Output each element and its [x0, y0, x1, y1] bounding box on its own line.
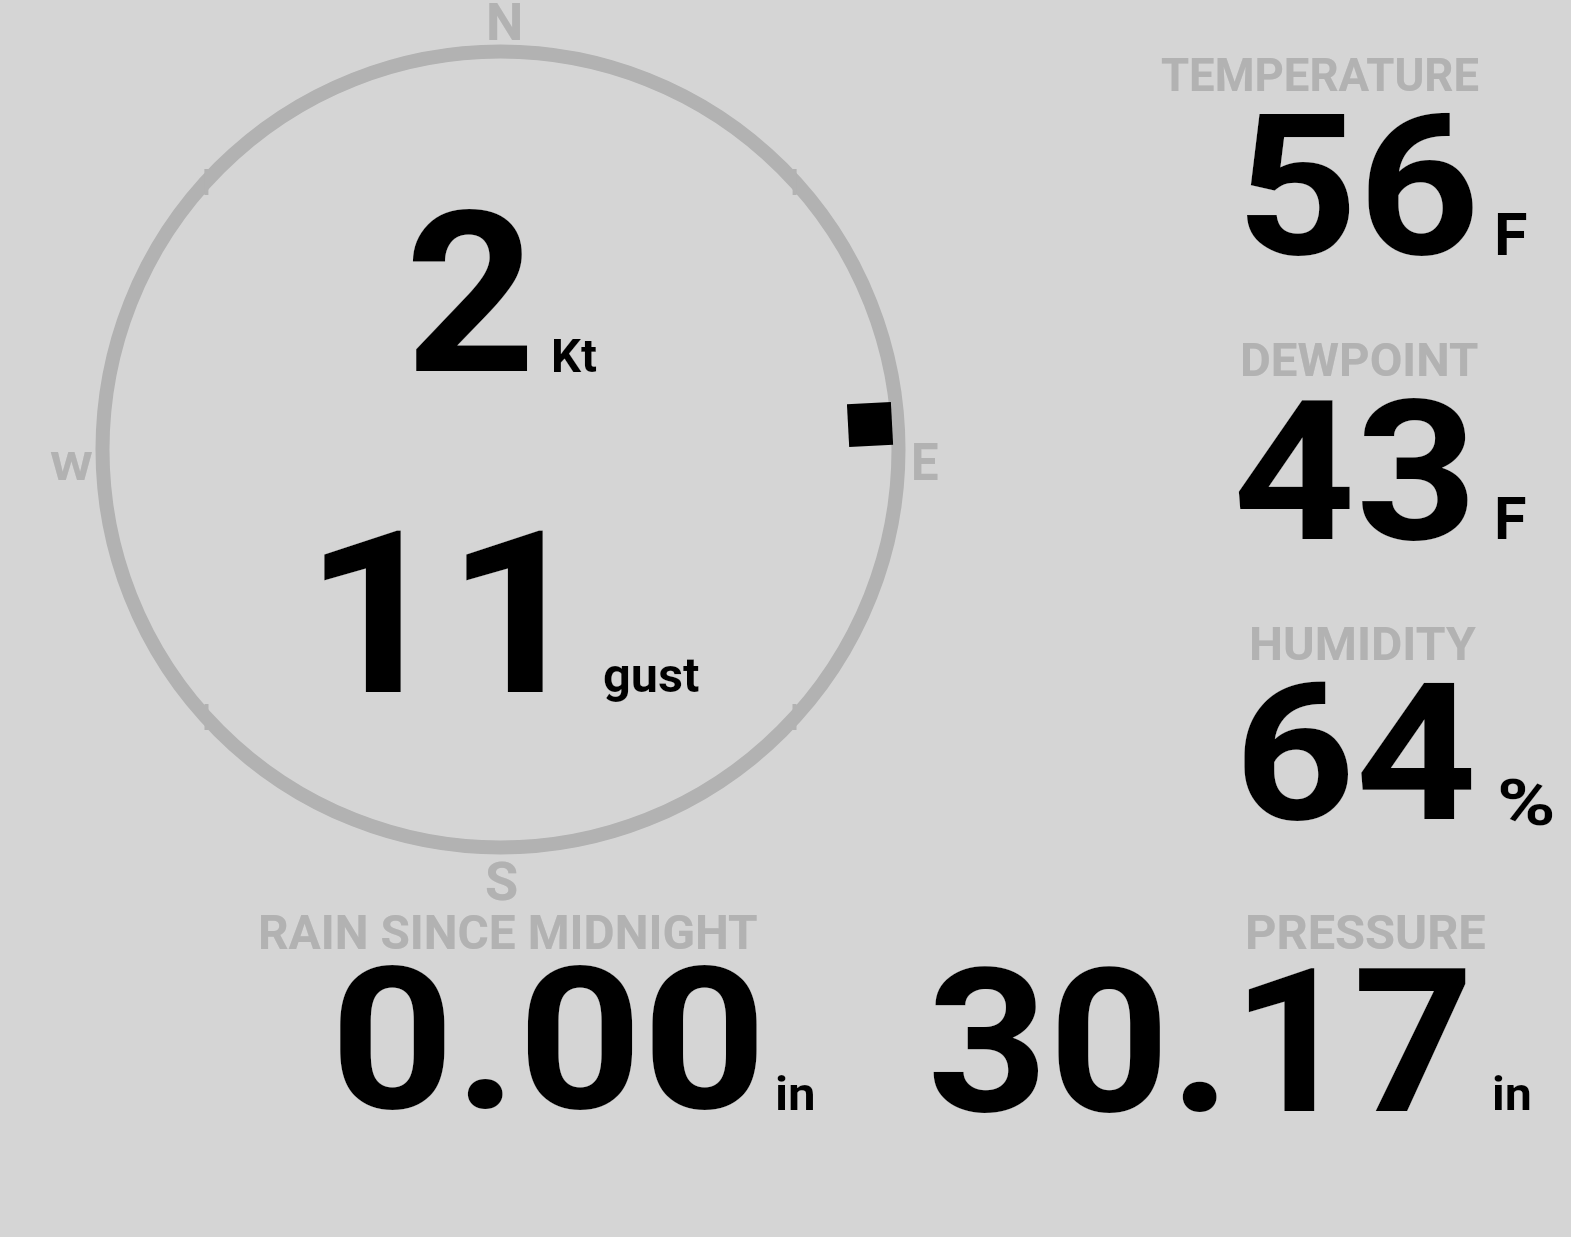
staticText: S — [485, 850, 519, 913]
staticText: PRESSURE — [1245, 904, 1486, 961]
staticText: 43 — [1233, 359, 1478, 586]
staticText: RAIN SINCE MIDNIGHT — [258, 904, 758, 961]
staticText: W — [50, 444, 94, 490]
staticText: gust — [603, 647, 700, 703]
staticText: HUMIDITY — [1249, 617, 1476, 671]
staticText: % — [1497, 765, 1556, 841]
button[interactable]: Pressure 30.17 inches — [920, 900, 1540, 1120]
staticText: 2 — [405, 162, 537, 426]
staticText: N — [486, 0, 524, 53]
staticText: DEWPOINT — [1240, 332, 1479, 387]
staticText: F — [1494, 483, 1527, 553]
staticText: 64 — [1234, 641, 1477, 866]
staticText: F — [1494, 199, 1528, 269]
staticText: 30.17 — [927, 925, 1475, 1159]
button[interactable]: Rain since midnight 0.00 inches — [250, 900, 830, 1120]
staticText: 0.00 — [330, 923, 767, 1156]
staticText: 11 — [304, 481, 588, 747]
button[interactable]: Gusting to 11 knots — [300, 480, 710, 705]
staticText: TEMPERATURE — [1161, 47, 1479, 102]
button[interactable]: Wind direction compass, east — [102, 51, 899, 848]
staticText: in — [775, 1067, 816, 1121]
staticText: 56 — [1236, 72, 1480, 302]
staticText: E — [911, 433, 939, 493]
staticText: in — [1492, 1066, 1532, 1121]
button[interactable]: Temperature 56 F — [1150, 45, 1560, 270]
button[interactable]: Humidity 64 percent — [1150, 615, 1560, 840]
button[interactable]: Dewpoint 43 F — [1150, 330, 1560, 555]
staticText: Kt — [551, 328, 597, 383]
button[interactable]: Wind speed 2 knots — [330, 160, 710, 390]
